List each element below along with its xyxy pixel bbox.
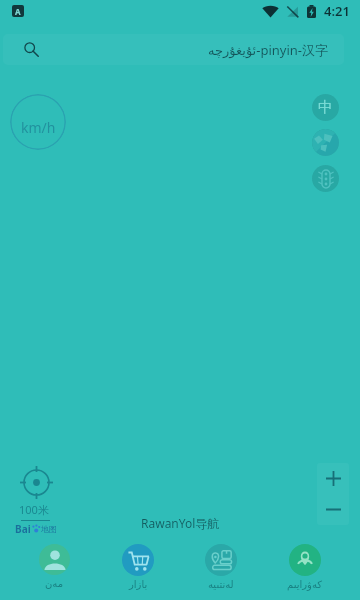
- staticText: 4:21: [324, 2, 350, 20]
- staticText: km/h: [21, 118, 56, 137]
- staticText: ئۇيغۇرچە-pinyin-汉字: [208, 41, 328, 59]
- button[interactable]: Language: [312, 94, 339, 121]
- staticText: A: [15, 6, 21, 17]
- button[interactable]: Zoom out: [317, 494, 349, 525]
- button[interactable]: Map layers: [312, 129, 339, 156]
- staticText: Bai: [15, 522, 31, 536]
- staticText: 100米: [19, 502, 49, 517]
- staticText: مەن: [45, 578, 64, 590]
- staticText: كەۋرايىم: [287, 579, 323, 591]
- button[interactable]: Speed: [10, 94, 66, 150]
- button[interactable]: مەن: [16, 544, 92, 590]
- staticText: 中: [318, 98, 333, 117]
- button[interactable]: My location: [20, 466, 53, 499]
- staticText: بازار: [129, 579, 148, 591]
- staticText: 地图: [41, 524, 57, 534]
- button[interactable]: ئۇيغۇرچە-pinyin-汉字: [3, 34, 344, 65]
- button[interactable]: كەۋرايىم: [267, 544, 343, 591]
- button[interactable]: Zoom in: [317, 463, 349, 494]
- staticText: RawanYol导航: [141, 515, 220, 531]
- button[interactable]: بازار: [100, 544, 176, 591]
- button[interactable]: لەنتىيە: [183, 544, 259, 591]
- staticText: لەنتىيە: [208, 579, 234, 591]
- button[interactable]: Traffic: [312, 165, 339, 192]
